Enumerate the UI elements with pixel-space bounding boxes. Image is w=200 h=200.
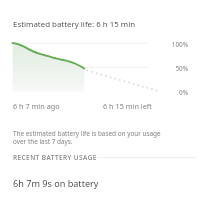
staticText: 50% (150, 64, 188, 73)
button[interactable]: 6h 7m 9s on battery (0, 170, 200, 196)
staticText: Estimated battery life: 6 h 15 min (13, 19, 136, 30)
staticText: 100% (150, 40, 188, 49)
staticText: 0% (150, 88, 188, 97)
staticText: RECENT BATTERY USAGE (13, 153, 97, 162)
staticText: 6 h 15 min left (103, 101, 152, 111)
staticText: 6 h 7 min ago (13, 101, 60, 111)
staticText: 6h 7m 9s on battery (13, 177, 99, 189)
staticText: The estimated battery life is based on y… (13, 129, 169, 146)
